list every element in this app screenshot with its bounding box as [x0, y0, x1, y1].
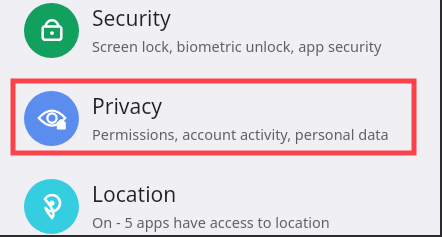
other: Security	[24, 3, 79, 58]
staticText: On - 5 apps have access to location	[92, 212, 330, 232]
other: Location	[24, 179, 79, 234]
button[interactable]: Security	[0, 2, 442, 58]
staticText: Location	[92, 180, 177, 209]
button[interactable]: Location	[0, 178, 442, 234]
staticText: Security	[92, 4, 171, 33]
staticText: Permissions, account activity, personal …	[92, 124, 389, 144]
staticText: Privacy	[92, 92, 163, 121]
staticText: Screen lock, biometric unlock, app secur…	[92, 36, 382, 56]
other: Privacy	[24, 91, 79, 146]
button[interactable]: Privacy	[0, 90, 442, 146]
